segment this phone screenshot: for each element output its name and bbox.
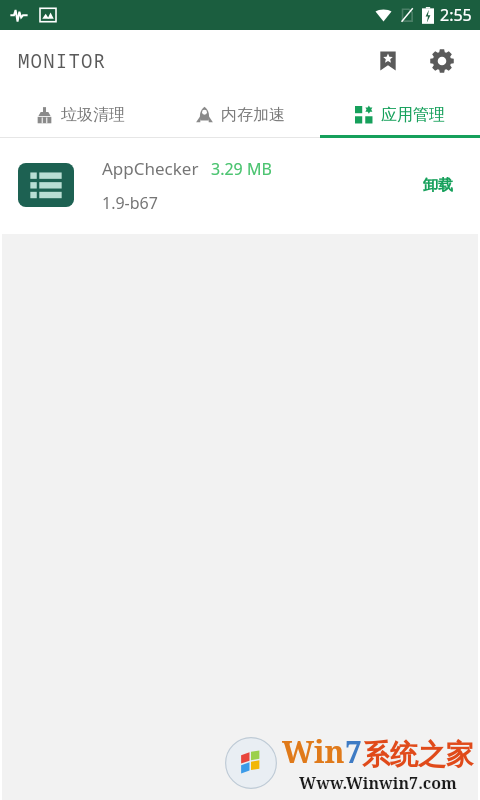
staticText: Win	[282, 731, 345, 772]
staticText: 内存加速	[221, 105, 285, 125]
staticText: AppChecker	[102, 157, 199, 180]
button[interactable]: Bookmarks	[364, 37, 412, 85]
staticText: 7	[345, 731, 362, 772]
button[interactable]: 内存加速	[160, 92, 320, 138]
staticText: 应用管理	[381, 105, 445, 125]
button[interactable]: 卸载	[396, 138, 480, 232]
button[interactable]: AppChecker	[0, 138, 480, 232]
staticText: 3.29 MB	[211, 158, 272, 180]
staticText: MONITOR	[18, 48, 107, 74]
staticText: 1.9-b67	[102, 192, 158, 214]
button[interactable]: Settings	[418, 37, 466, 85]
staticText: 垃圾清理	[61, 105, 125, 125]
staticText: Www.Winwin7.com	[299, 772, 457, 794]
staticText: 卸载	[423, 176, 453, 195]
staticText: 2:55	[440, 4, 472, 26]
button[interactable]: 应用管理	[320, 92, 480, 138]
staticText: 系统之家	[362, 737, 474, 772]
button[interactable]: 垃圾清理	[0, 92, 160, 138]
